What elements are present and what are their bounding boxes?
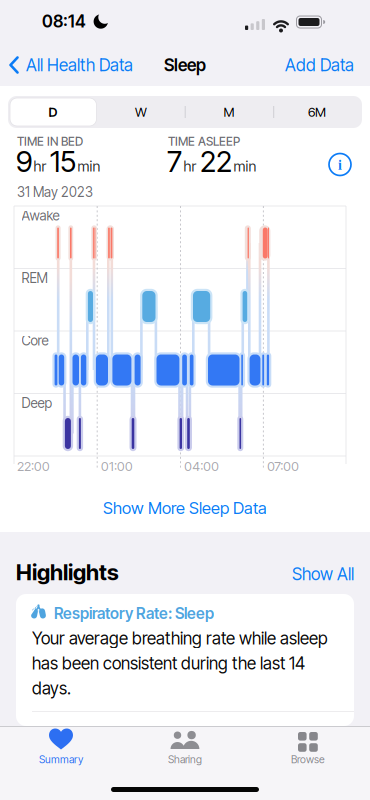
staticText: i [338,157,342,173]
staticText: Highlights [16,559,119,586]
button[interactable]: D [9,96,97,128]
staticText: 22 [200,144,232,179]
staticText: Summary [39,753,83,766]
staticText: min [233,157,256,175]
button[interactable]: Browse [253,726,363,774]
button[interactable]: Respiratory Rate: Sleep [16,594,354,726]
staticText: Your average breathing rate while asleep [32,628,328,649]
staticText: 22:00 [17,458,50,474]
staticText: 15 [50,144,76,179]
staticText: Add Data [285,55,354,75]
staticText: D [48,104,57,120]
staticText: Deep [21,395,52,411]
staticText: Awake [21,207,59,224]
staticText: 08:14 [42,11,86,32]
button[interactable]: Summary [6,726,116,774]
staticText: 7 [167,144,182,179]
staticText: TIME ASLEEP [168,134,240,148]
button[interactable]: M [185,96,273,128]
button[interactable]: About Sleep Data [327,151,353,177]
staticText: TIME IN BED [17,134,83,148]
staticText: 9 [16,144,32,179]
staticText: Browse [291,753,325,766]
staticText: Core [21,332,48,349]
staticText: 04:00 [184,458,219,474]
button[interactable]: Add Data [244,44,354,86]
staticText: 01:00 [101,458,133,474]
button[interactable]: Back [9,44,133,86]
staticText: 07:00 [267,458,299,474]
staticText: REM [21,270,47,286]
button[interactable]: 6M [273,96,361,128]
staticText: days. [32,678,71,699]
staticText: All Health Data [26,55,133,75]
staticText: hr [33,157,46,175]
staticText: Sleep [164,55,206,75]
button[interactable]: Show More Sleep Data [0,495,370,521]
staticText: min [77,157,100,175]
staticText: 31 May 2023 [17,184,93,200]
staticText: 6M [308,104,326,120]
staticText: Show More Sleep Data [103,498,267,518]
staticText: W [135,104,147,120]
staticText: has been consistent during the last 14 [32,653,305,674]
staticText: hr [183,157,196,175]
staticText: Show All [292,564,354,584]
staticText: Sharing [168,753,202,766]
staticText: Respiratory Rate: Sleep [54,604,214,623]
button[interactable]: W [97,96,185,128]
button[interactable]: Show All [244,562,354,586]
staticText: M [223,104,234,120]
button[interactable]: Sharing [130,726,240,774]
